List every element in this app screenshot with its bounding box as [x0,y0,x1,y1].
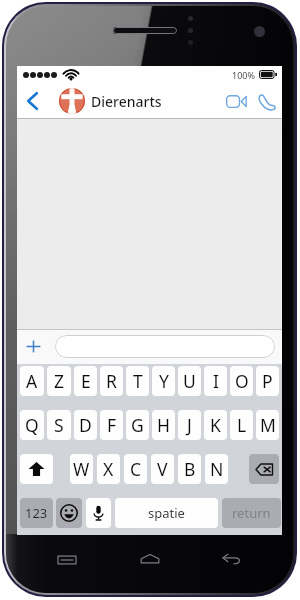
button[interactable]: Back [20,83,44,119]
staticText: D [79,413,92,437]
button[interactable]: Q [20,410,44,440]
button[interactable]: W [70,454,93,484]
staticText: return [232,504,271,522]
button[interactable]: return [222,498,281,528]
staticText: 123 [25,504,48,522]
button[interactable]: Home [140,552,160,566]
staticText: K [210,413,221,437]
button[interactable]: V [151,454,174,484]
staticText: J [187,413,192,437]
button[interactable] [249,454,279,484]
button[interactable]: O [230,366,253,396]
staticText: A [26,369,38,393]
button[interactable]: U [178,366,201,396]
staticText: X [103,457,114,481]
button[interactable]: G [126,410,149,440]
button[interactable]: S [47,410,71,440]
button[interactable]: P [256,366,279,396]
button[interactable]: T [126,366,149,396]
staticText: E [81,369,91,393]
staticText: M [260,413,276,437]
button[interactable]: F [100,410,123,440]
button[interactable]: R [100,366,123,396]
staticText: Dierenarts [91,92,162,111]
button[interactable]: K [204,410,227,440]
button[interactable]: Call [253,83,281,119]
button[interactable]: C [124,454,147,484]
staticText: I [213,369,219,393]
staticText: 100% [232,69,255,81]
staticText: P [262,369,273,393]
button[interactable]: Recent apps [57,553,77,567]
staticText: Z [54,369,65,393]
button[interactable]: Back [221,552,241,566]
button[interactable]: Y [152,366,175,396]
staticText: H [157,413,170,437]
button[interactable]: D [74,410,97,440]
button[interactable]: L [230,410,253,440]
button[interactable]: 123 [20,498,53,528]
button[interactable]: E [74,366,97,396]
button[interactable]: Z [47,366,71,396]
staticText: T [133,369,143,393]
button[interactable]: Add attachment [21,334,46,359]
button[interactable]: H [152,410,175,440]
staticText: L [237,413,247,437]
staticText: Y [159,369,169,393]
button[interactable] [20,454,53,484]
staticText: O [235,369,249,393]
button[interactable]: J [178,410,201,440]
button[interactable]: M [256,410,279,440]
staticText: U [183,369,196,393]
button[interactable] [86,498,111,528]
staticText: R [106,369,117,393]
staticText: Q [25,413,39,437]
staticText: C [130,457,142,481]
staticText: V [157,457,168,481]
button[interactable]: A [20,366,44,396]
button[interactable]: Video call [222,83,250,119]
button[interactable]: N [205,454,228,484]
button[interactable]: I [204,366,227,396]
button[interactable]: X [97,454,120,484]
staticText: W [73,457,90,481]
staticText: F [107,413,117,437]
button[interactable]: spatie [115,498,218,528]
staticText: spatie [148,504,185,522]
button[interactable] [55,335,275,358]
staticText: S [54,413,64,437]
button[interactable] [56,498,82,528]
staticText: G [131,413,144,437]
staticText: B [184,457,196,481]
button[interactable]: B [178,454,201,484]
staticText: N [210,457,224,481]
